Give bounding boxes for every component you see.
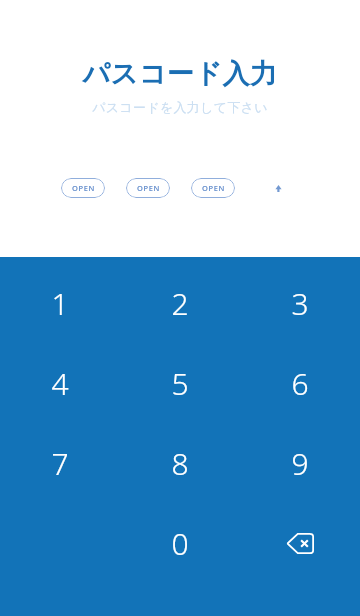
button[interactable]: 2 [120, 263, 240, 343]
button[interactable]: 6 [240, 343, 360, 423]
button[interactable]: OPEN [126, 178, 170, 198]
staticText: OPEN [137, 183, 160, 193]
button[interactable]: Backspace [240, 503, 360, 583]
button[interactable]: OPEN [61, 178, 105, 198]
staticText: 7 [51, 443, 69, 484]
staticText: 8 [171, 443, 189, 484]
staticText: 6 [291, 363, 309, 404]
staticText: 1 [51, 283, 69, 324]
button[interactable]: 1 [0, 263, 120, 343]
staticText: 0 [171, 523, 189, 564]
staticText: 3 [291, 283, 309, 324]
button[interactable]: 4 [0, 343, 120, 423]
button[interactable]: 5 [120, 343, 240, 423]
button[interactable]: 3 [240, 263, 360, 343]
button[interactable]: 9 [240, 423, 360, 503]
staticText: OPEN [72, 183, 95, 193]
staticText: パスコードを入力して下さい [92, 99, 268, 115]
button[interactable]: OPEN [191, 178, 235, 198]
button[interactable]: 8 [120, 423, 240, 503]
staticText: 4 [51, 363, 69, 404]
staticText: OPEN [202, 183, 225, 193]
button[interactable]: Empty passcode slot [256, 178, 300, 198]
staticText: 2 [171, 283, 189, 324]
staticText: パスコード入力 [82, 57, 278, 91]
staticText: 5 [171, 363, 189, 404]
staticText: 9 [291, 443, 309, 484]
button[interactable]: 0 [120, 503, 240, 583]
button[interactable]: 7 [0, 423, 120, 503]
